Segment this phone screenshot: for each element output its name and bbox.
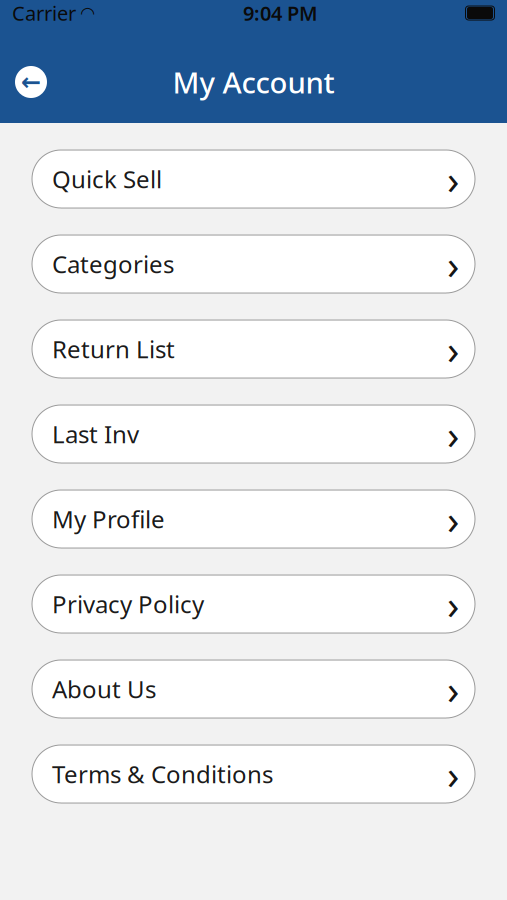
staticText: About Us [52,673,156,705]
staticText: › [447,407,459,460]
button[interactable]: Privacy Policy [32,575,475,633]
button[interactable]: Quick Sell [32,150,475,208]
staticText: ← [21,68,41,96]
staticText: My Profile [52,503,165,535]
staticText: › [447,662,459,715]
button[interactable]: Categories [32,235,475,293]
staticText: Privacy Policy [52,588,204,620]
staticText: 9:04 PM [243,0,318,26]
button[interactable]: Last Inv [32,405,475,463]
staticText: My Account [172,62,334,101]
button[interactable]: My Profile [32,490,475,548]
staticText: › [447,237,459,290]
staticText: Terms & Conditions [52,758,273,790]
staticText: Categories [52,248,174,280]
button[interactable]: Return List [32,320,475,378]
staticText: › [447,152,459,205]
staticText: Return List [52,333,175,365]
button[interactable]: About Us [32,660,475,718]
button[interactable]: Back [11,62,51,102]
button[interactable]: Terms & Conditions [32,745,475,803]
staticText: › [447,492,459,545]
staticText: ◠ [81,3,94,23]
staticText: Quick Sell [52,163,162,195]
staticText: › [447,322,459,375]
staticText: › [447,577,459,630]
staticText: › [447,747,459,800]
staticText: Last Inv [52,418,139,450]
staticText: Carrier [12,0,76,26]
